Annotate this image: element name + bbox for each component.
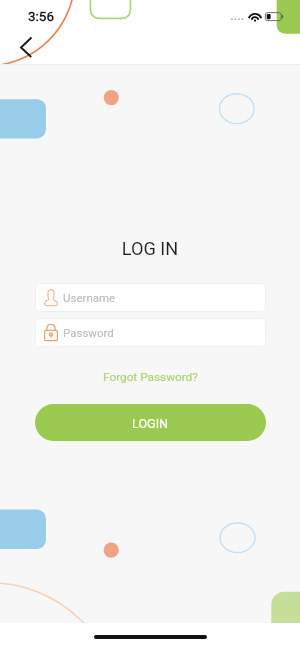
staticText: Password — [63, 326, 114, 339]
button[interactable]: Back — [11, 29, 43, 61]
staticText: 3:56 — [28, 8, 55, 24]
staticText: Username — [63, 291, 116, 304]
staticText: Forgot Password? — [103, 370, 198, 384]
button[interactable]: LOGIN — [35, 404, 266, 441]
staticText: LOG IN — [0, 238, 300, 259]
staticText: LOGIN — [132, 416, 169, 431]
button[interactable]: Password — [35, 318, 266, 347]
button[interactable]: Username — [35, 283, 266, 312]
button[interactable]: Forgot Password? — [93, 367, 208, 387]
